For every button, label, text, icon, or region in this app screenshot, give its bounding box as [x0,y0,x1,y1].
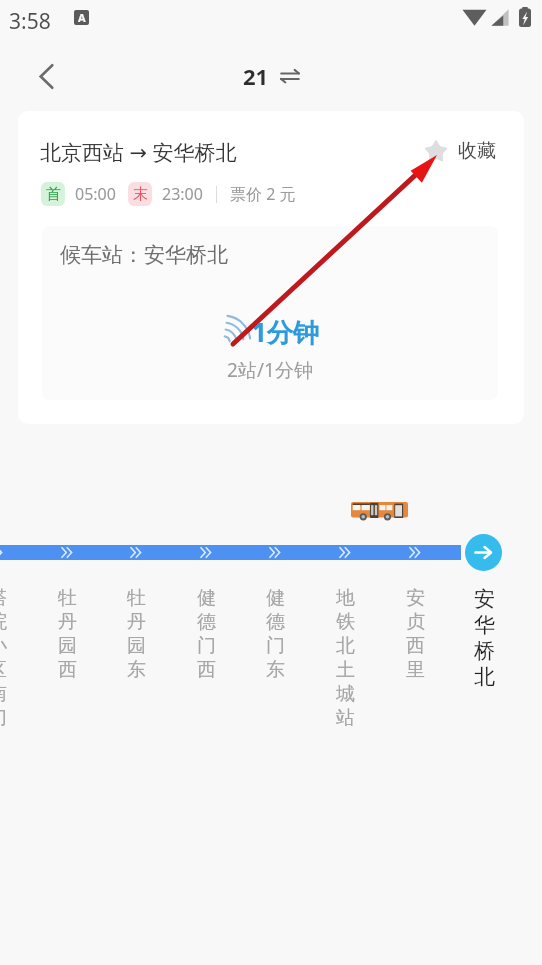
staticText: 站 [336,706,355,730]
staticText: 末 [133,185,148,204]
staticText: 德 [266,610,285,634]
button[interactable]: Back [25,55,67,97]
staticText: 塔 [0,586,7,610]
staticText: 园 [127,634,146,658]
staticText: 德 [197,610,216,634]
staticText: 门 [266,634,285,658]
staticText: 园 [58,634,77,658]
staticText: 桥 [474,638,495,664]
staticText: 区 [0,658,7,682]
staticText: 城 [336,682,355,706]
staticText: 西 [197,658,216,682]
button[interactable]: 收藏 [422,137,496,165]
staticText: 丹 [58,610,77,634]
staticText: 23:00 [162,183,203,205]
staticText: 候车站：安华桥北 [60,242,228,268]
staticText: 21 [243,61,269,91]
staticText: 健 [197,586,216,610]
staticText: 小 [0,634,7,658]
staticText: 贞 [406,610,425,634]
staticText: 门 [197,634,216,658]
staticText: 票价 2 元 [230,183,296,205]
staticText: 1分钟 [252,314,319,350]
staticText: 北 [474,664,495,690]
staticText: 收藏 [458,139,496,163]
staticText: A [78,10,86,25]
staticText: 地 [336,586,355,610]
staticText: 安 [406,586,425,610]
staticText: 北 [336,634,355,658]
staticText: 牡 [127,586,146,610]
button[interactable]: Go to destination [465,534,502,571]
staticText: 首 [46,185,61,204]
staticText: 东 [127,658,146,682]
staticText: 里 [406,658,425,682]
staticText: 05:00 [75,183,116,205]
staticText: 牡 [58,586,77,610]
staticText: 2站/1分钟 [42,357,498,383]
staticText: 南 [0,682,7,706]
staticText: 北京西站 → 安华桥北 [40,138,237,167]
staticText: 西 [58,658,77,682]
staticText: 西 [406,634,425,658]
button[interactable]: 北京西站 → 安华桥北 [18,111,524,424]
staticText: 铁 [336,610,355,634]
staticText: 土 [336,658,355,682]
staticText: 丹 [127,610,146,634]
staticText: 健 [266,586,285,610]
staticText: 院 [0,610,7,634]
staticText: 门 [0,706,7,730]
staticText: 3:58 [9,7,51,36]
staticText: 安 [474,586,495,612]
staticText: 东 [266,658,285,682]
staticText: 华 [474,612,495,638]
